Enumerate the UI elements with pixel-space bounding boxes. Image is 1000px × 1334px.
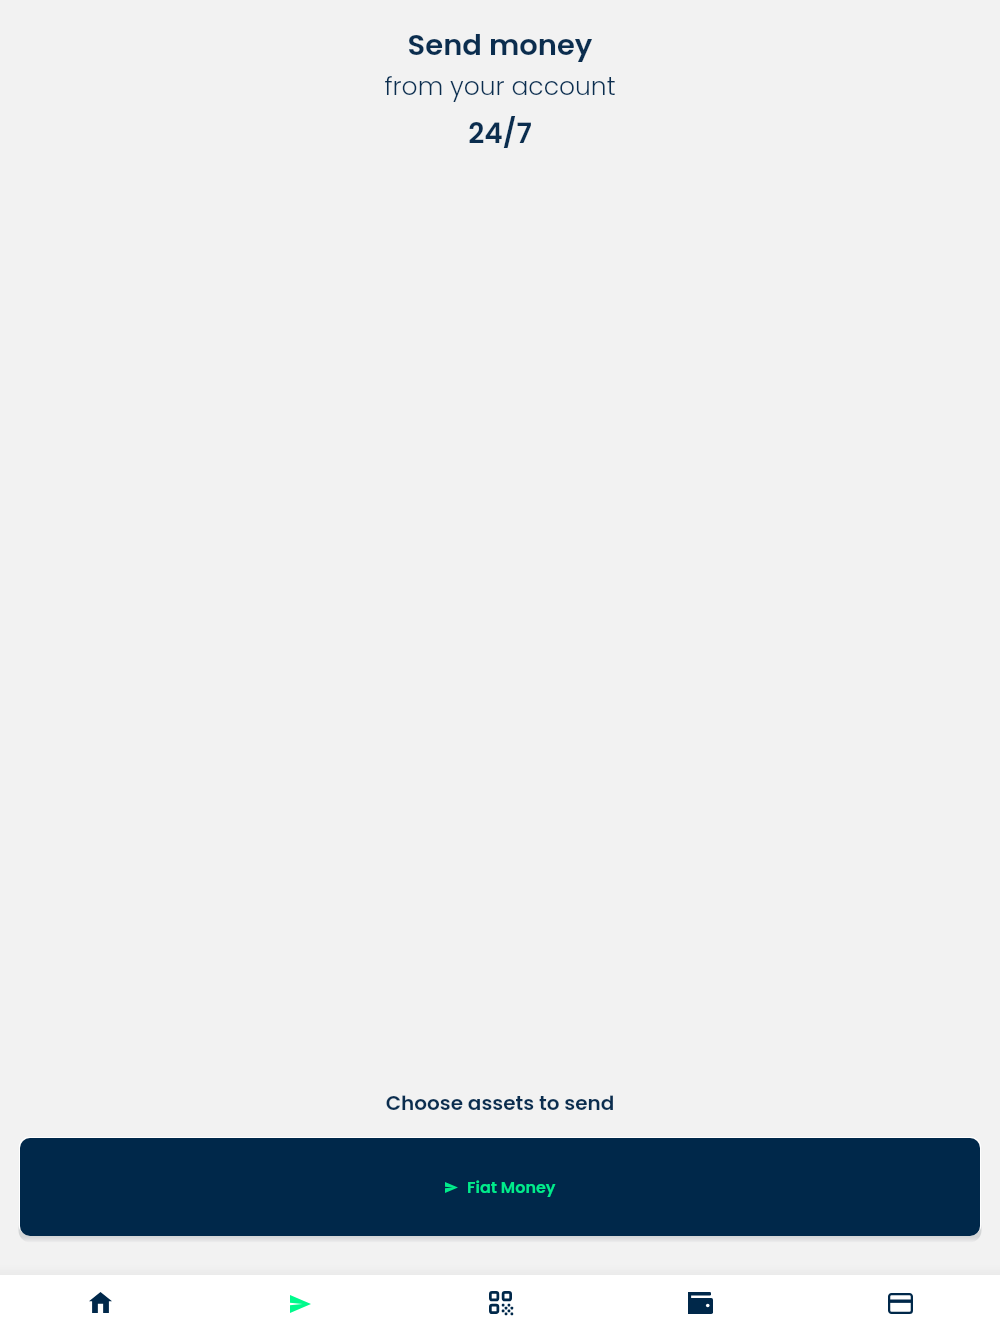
button[interactable]: Scan QR code	[400, 1275, 600, 1334]
staticText: Send money	[0, 25, 1000, 66]
staticText: Fiat Money	[467, 1176, 556, 1198]
button[interactable]: Send	[200, 1275, 400, 1334]
button[interactable]: Fiat Money	[20, 1138, 980, 1236]
button[interactable]: Home	[0, 1275, 200, 1334]
staticText: from your account	[0, 69, 1000, 104]
staticText: 24/7	[0, 114, 1000, 153]
button[interactable]: Cards	[800, 1275, 1000, 1334]
button[interactable]: Wallet	[600, 1275, 800, 1334]
staticText: Choose assets to send	[0, 1089, 1000, 1117]
